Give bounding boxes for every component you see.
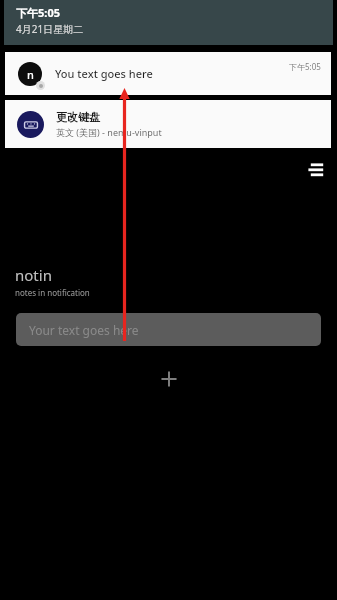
staticText: 下午5:05: [289, 61, 321, 72]
staticText: notin: [15, 265, 52, 285]
staticText: n: [27, 67, 34, 82]
button[interactable]: n: [5, 52, 331, 95]
staticText: 4月21日星期二: [16, 22, 84, 36]
staticText: 更改键盘: [56, 110, 100, 124]
staticText: 下午5:05: [16, 5, 60, 20]
button[interactable]: 更改键盘: [5, 100, 331, 148]
staticText: You text goes here: [55, 66, 153, 81]
staticText: 英文 (美国) - nemu-vinput: [56, 126, 162, 138]
staticText: Your text goes here: [29, 322, 139, 338]
button[interactable]: Add note: [152, 362, 186, 396]
button[interactable]: Sort notes: [300, 155, 328, 183]
button[interactable]: Your text goes here: [16, 313, 321, 346]
staticText: notes in notification: [15, 287, 90, 298]
